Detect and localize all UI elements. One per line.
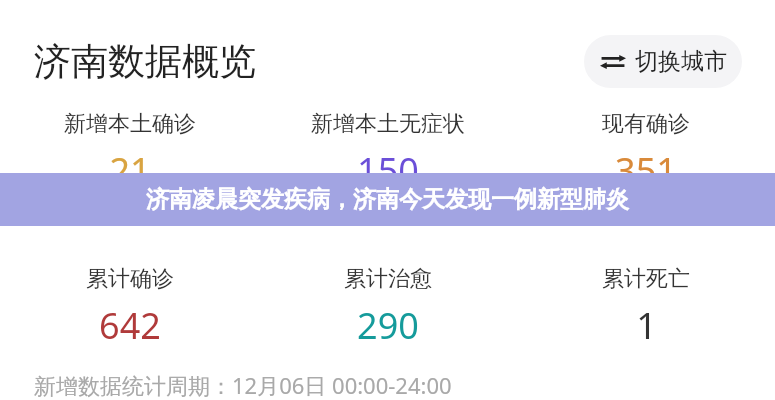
- staticText: 切换城市: [635, 47, 727, 76]
- staticText: 济南数据概览: [34, 38, 256, 85]
- staticText: 济南凌晨突发疾病，济南今天发现一例新型肺炎: [146, 185, 629, 214]
- button[interactable]: 切换城市: [584, 35, 742, 88]
- staticText: 642: [99, 301, 161, 350]
- staticText: 1: [636, 301, 657, 350]
- staticText: 290: [357, 301, 419, 350]
- other: 切换城市: [600, 49, 626, 75]
- staticText: 351: [615, 146, 677, 195]
- staticText: 累计确诊: [86, 265, 174, 293]
- staticText: 21: [109, 146, 151, 195]
- staticText: 累计死亡: [602, 265, 690, 293]
- staticText: 现有确诊: [602, 110, 690, 138]
- staticText: 新增本土确诊: [64, 110, 196, 138]
- staticText: 新增数据统计周期：12月06日 00:00-24:00: [34, 370, 452, 400]
- staticText: 累计治愈: [344, 265, 432, 293]
- staticText: 150: [357, 146, 419, 195]
- staticText: 新增本土无症状: [311, 110, 465, 138]
